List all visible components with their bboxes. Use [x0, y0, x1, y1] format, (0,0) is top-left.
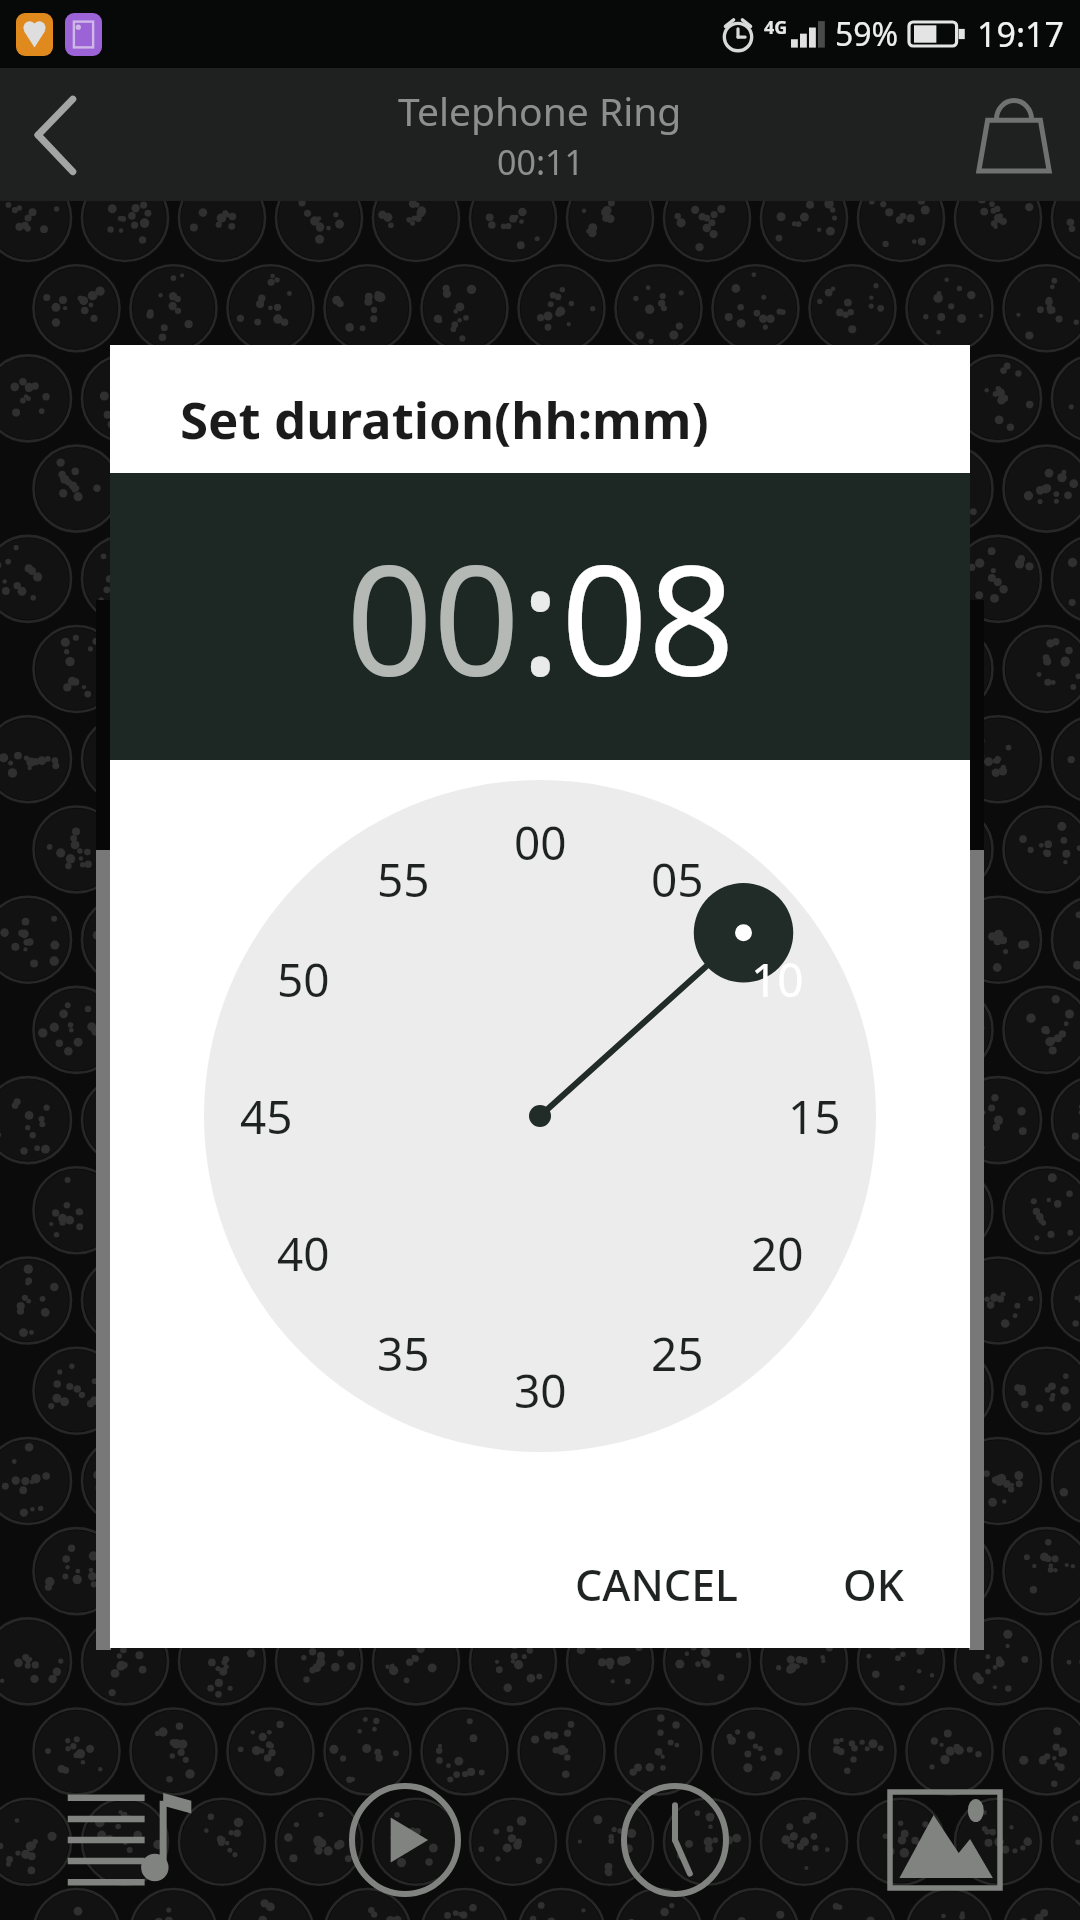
- staticText: 35: [377, 1322, 430, 1385]
- button[interactable]: Timer: [540, 1760, 810, 1920]
- staticText: 30: [514, 1359, 567, 1422]
- staticText: 00: [346, 513, 520, 720]
- button[interactable]: Image: [810, 1760, 1080, 1920]
- button[interactable]: Back: [0, 68, 112, 201]
- staticText: 25: [651, 1322, 704, 1385]
- staticText: :: [520, 513, 561, 720]
- staticText: 40: [277, 1222, 330, 1285]
- staticText: 55: [377, 848, 430, 911]
- staticText: 59%: [835, 12, 899, 56]
- staticText: 00:11: [497, 139, 584, 185]
- staticText: 00: [514, 811, 567, 874]
- button[interactable]: Play: [270, 1760, 540, 1920]
- staticText: Telephone Ring: [398, 84, 682, 137]
- button[interactable]: Playlist: [0, 1760, 270, 1920]
- staticText: Set duration(hh:mm): [180, 384, 709, 453]
- staticText: 50: [277, 948, 330, 1011]
- staticText: 45: [240, 1085, 293, 1148]
- staticText: 15: [788, 1085, 841, 1148]
- button[interactable]: OK: [819, 1531, 928, 1638]
- button[interactable]: Store: [948, 68, 1080, 201]
- button[interactable]: CANCEL: [551, 1531, 763, 1638]
- staticText: 10: [751, 948, 804, 1011]
- staticText: 19:17: [977, 11, 1064, 57]
- button[interactable]: Minute dial: [204, 780, 876, 1452]
- staticText: CANCEL: [575, 1555, 739, 1614]
- staticText: 08: [561, 513, 735, 720]
- staticText: 20: [751, 1222, 804, 1285]
- staticText: OK: [843, 1555, 904, 1614]
- staticText: 4G: [764, 15, 788, 40]
- staticText: 05: [651, 848, 704, 911]
